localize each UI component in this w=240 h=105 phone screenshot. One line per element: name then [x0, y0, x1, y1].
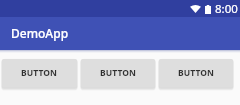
- button[interactable]: BUTTON: [159, 59, 233, 87]
- staticText: 8:00: [215, 1, 238, 17]
- button[interactable]: BUTTON: [81, 59, 155, 87]
- button[interactable]: BUTTON: [2, 59, 77, 87]
- staticText: BUTTON: [21, 67, 58, 79]
- staticText: BUTTON: [100, 67, 137, 79]
- staticText: DemoApp: [11, 25, 69, 41]
- other: Battery: [205, 5, 211, 14]
- other: Wi-Fi signal: [190, 5, 201, 13]
- staticText: BUTTON: [178, 67, 215, 79]
